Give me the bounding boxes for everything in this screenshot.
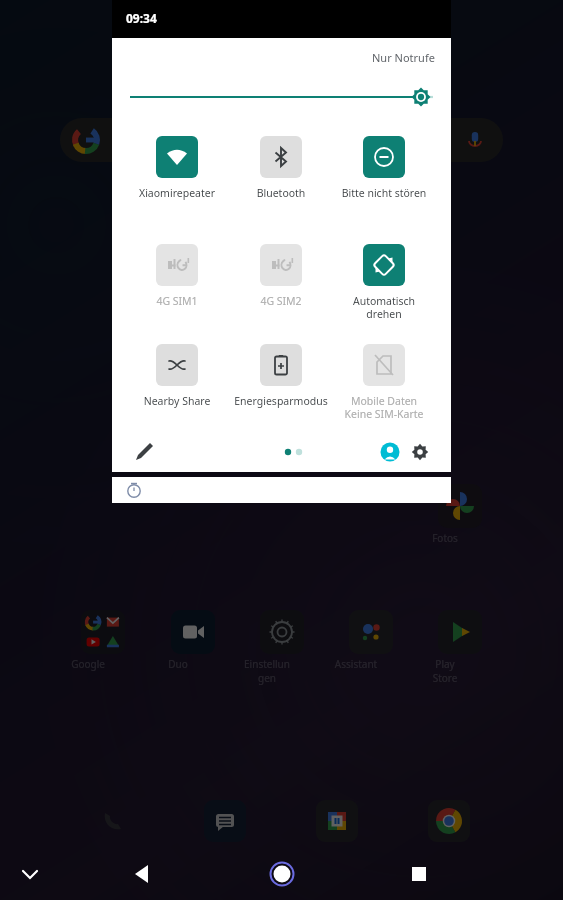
button[interactable]: Settings [398, 430, 442, 474]
staticText: Bluetooth [231, 186, 331, 200]
button[interactable]: Bitte nicht stören [334, 136, 434, 200]
staticText: Mobile Daten Keine SIM-Karte [334, 394, 434, 421]
button[interactable]: 4G SIM2 [231, 244, 331, 308]
button[interactable] [316, 800, 358, 842]
button[interactable]: User [368, 430, 412, 474]
button[interactable]: Mobile Daten Keine SIM-Karte [334, 344, 434, 421]
button[interactable] [428, 800, 470, 842]
staticText: Automatisch drehen [334, 294, 434, 321]
button[interactable]: Google [80, 610, 126, 671]
button[interactable]: Fotos [437, 484, 483, 545]
button[interactable] [60, 118, 503, 162]
staticText: 09:34 [126, 10, 157, 26]
button[interactable] [204, 800, 246, 842]
staticText: Bitte nicht stören [334, 186, 434, 200]
staticText: Assistant [333, 657, 379, 671]
button[interactable]: Xiaomirepeater [127, 136, 227, 200]
button[interactable]: Automatisch drehen [334, 244, 434, 321]
button[interactable]: Back [120, 852, 164, 896]
button[interactable]: Nearby Share [127, 344, 227, 408]
button[interactable]: Play Store [437, 610, 483, 685]
button[interactable]: Brightness [130, 84, 433, 110]
button[interactable]: Einstellungen [259, 610, 305, 685]
button[interactable]: Recents [397, 852, 441, 896]
staticText: Fotos [422, 531, 468, 545]
staticText: Nearby Share [127, 394, 227, 408]
staticText: Duo [155, 657, 201, 671]
button[interactable]: 4G SIM1 [127, 244, 227, 308]
button[interactable]: Duo [170, 610, 216, 671]
button[interactable] [272, 430, 316, 474]
staticText: 4G SIM1 [127, 294, 227, 308]
staticText: Play Store [422, 657, 468, 685]
button[interactable]: Collapse [8, 852, 52, 896]
staticText: Einstellungen [244, 657, 290, 685]
staticText: Google [65, 657, 111, 671]
staticText: 4G SIM2 [231, 294, 331, 308]
button[interactable]: Assistant [348, 610, 394, 671]
button[interactable]: Bluetooth [231, 136, 331, 200]
button[interactable]: Edit [122, 430, 166, 474]
staticText: Xiaomirepeater [127, 186, 227, 200]
button[interactable]: Energiesparmodus [231, 344, 331, 408]
staticText: Nur Notrufe [372, 50, 435, 65]
button[interactable] [112, 477, 451, 503]
staticText: Energiesparmodus [231, 394, 331, 408]
button[interactable]: Home [260, 852, 304, 896]
